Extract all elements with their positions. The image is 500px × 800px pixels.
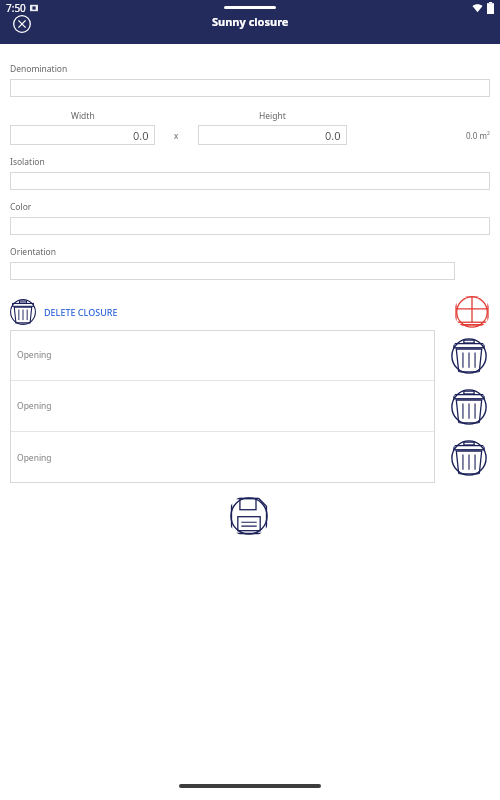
button[interactable]: Opening	[10, 381, 435, 431]
button[interactable]: 0.0	[198, 125, 347, 145]
staticText: 0.0 m	[466, 130, 487, 141]
staticText: DELETE CLOSURE	[44, 306, 118, 318]
staticText: 7:50	[6, 1, 26, 15]
staticText: x	[174, 130, 179, 141]
staticText: Height	[259, 110, 286, 122]
button[interactable]: DELETE CLOSURE	[10, 299, 122, 325]
staticText: Sunny closure	[212, 14, 289, 29]
button[interactable]: Delete opening	[450, 388, 488, 426]
button[interactable]	[10, 217, 490, 235]
button[interactable]: 0.0	[10, 125, 155, 145]
staticText: Isolation	[10, 156, 45, 168]
button[interactable]	[10, 172, 490, 190]
button[interactable]	[10, 79, 490, 97]
staticText: Opening	[17, 452, 52, 464]
staticText: 2	[487, 130, 490, 137]
staticText: Denomination	[10, 63, 68, 75]
button[interactable]: Close	[10, 12, 34, 36]
button[interactable]: Add opening	[454, 296, 490, 328]
button[interactable]: Delete opening	[450, 337, 488, 375]
staticText: Width	[71, 110, 95, 122]
staticText: 0.0	[133, 128, 149, 143]
staticText: 0.0	[325, 128, 341, 143]
button[interactable]	[10, 262, 455, 280]
button[interactable]: Delete opening	[450, 439, 488, 477]
staticText: Color	[10, 201, 32, 213]
staticText: Opening	[17, 349, 52, 361]
button[interactable]: Save	[228, 495, 270, 537]
staticText: Orientation	[10, 246, 56, 258]
button[interactable]: Opening	[10, 432, 435, 483]
staticText: Opening	[17, 400, 52, 412]
button[interactable]: Opening	[10, 330, 435, 380]
